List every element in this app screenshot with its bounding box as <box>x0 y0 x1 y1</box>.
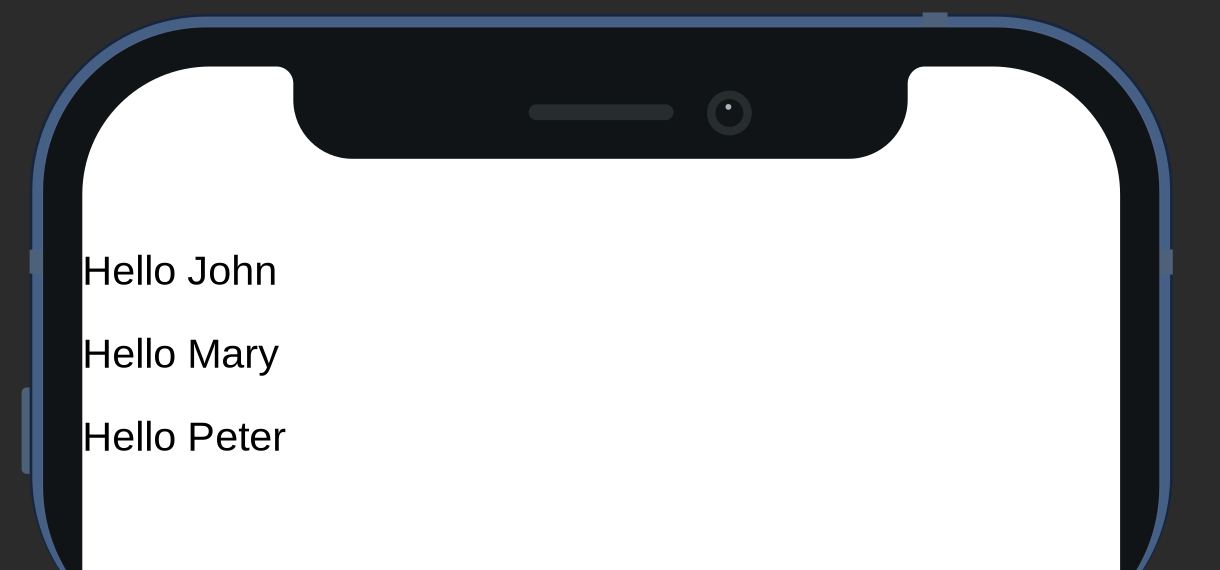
staticText: Hello John <box>82 247 277 294</box>
button[interactable]: Hello Peter <box>82 395 1120 478</box>
staticText: Hello Mary <box>82 330 279 377</box>
staticText: Hello Peter <box>82 413 286 460</box>
button[interactable]: Hello John <box>82 229 1120 312</box>
button[interactable]: Hello Mary <box>82 312 1120 395</box>
